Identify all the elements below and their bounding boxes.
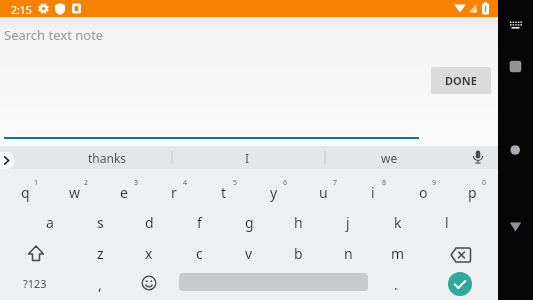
button[interactable] [498,215,533,239]
staticText: n [344,244,353,263]
staticText: 1 [34,178,39,188]
staticText: k [394,213,402,232]
button[interactable]: q [0,177,50,208]
staticText: d [145,213,154,232]
staticText: i [371,183,375,202]
button[interactable]: k [373,207,423,238]
staticText: x [145,244,153,263]
button[interactable] [436,240,486,266]
staticText: r [171,183,177,202]
staticText: s [97,213,104,232]
staticText: m [391,244,405,263]
button[interactable]: z [75,238,125,269]
button[interactable]: p [447,177,497,208]
staticText: 9 [432,178,437,188]
button[interactable] [498,55,533,79]
staticText: a [46,213,54,232]
staticText: l [445,213,449,232]
button[interactable]: a [25,207,75,238]
staticText: y [270,183,278,202]
button[interactable] [0,152,14,169]
button[interactable]: d [124,207,174,238]
button[interactable]: l [422,207,472,238]
staticText: 6 [283,178,288,188]
button[interactable]: o [398,177,448,208]
button[interactable]: e [99,177,149,208]
button[interactable]: , [75,269,125,300]
button[interactable]: i [348,177,398,208]
button[interactable]: y [249,177,299,208]
staticText: z [97,244,104,263]
staticText: f [197,213,202,232]
staticText: 2 [84,178,89,188]
button[interactable]: h [273,207,323,238]
button[interactable]: we [342,146,437,169]
button[interactable]: ?123 [10,270,60,297]
staticText: h [294,213,303,232]
button[interactable]: j [323,207,373,238]
staticText: p [468,183,477,202]
staticText: b [294,244,303,263]
staticText: thanks [88,150,127,166]
button[interactable] [10,240,62,266]
button[interactable]: s [75,207,125,238]
button[interactable]: b [273,238,323,269]
staticText: 2:15 [11,3,32,17]
staticText: we [381,150,398,166]
button[interactable]: . [371,269,421,300]
button[interactable]: thanks [60,146,155,169]
staticText: q [21,183,30,202]
staticText: 3 [134,178,139,188]
staticText: ?123 [23,276,47,291]
button[interactable]: u [298,177,348,208]
button[interactable]: g [224,207,274,238]
button[interactable]: I [200,146,295,169]
staticText: u [319,183,328,202]
staticText: t [221,183,227,202]
staticText: , [98,275,102,294]
button[interactable]: x [124,238,174,269]
button[interactable]: DONE [431,67,491,94]
staticText: w [69,183,81,202]
button[interactable]: t [199,177,249,208]
button[interactable]: n [323,238,373,269]
button[interactable] [498,136,533,160]
staticText: 5 [233,178,238,188]
staticText: 7 [333,178,338,188]
staticText: Search text note [4,26,104,44]
staticText: 8 [382,178,387,188]
button[interactable]: f [174,207,224,238]
button[interactable]: w [50,177,100,208]
staticText: c [196,244,203,263]
button[interactable] [448,272,472,296]
staticText: e [120,183,128,202]
staticText: o [419,183,428,202]
button[interactable]: v [224,238,274,269]
staticText: g [245,213,254,232]
staticText: 0 [482,178,487,188]
staticText: I [245,150,250,166]
staticText: . [394,275,398,294]
button[interactable]: m [373,238,423,269]
button[interactable] [137,271,161,295]
staticText: DONE [445,73,477,88]
button[interactable]: c [174,238,224,269]
staticText: v [245,244,253,263]
staticText: j [346,213,350,232]
staticText: 4 [183,178,188,188]
button[interactable]: r [149,177,199,208]
